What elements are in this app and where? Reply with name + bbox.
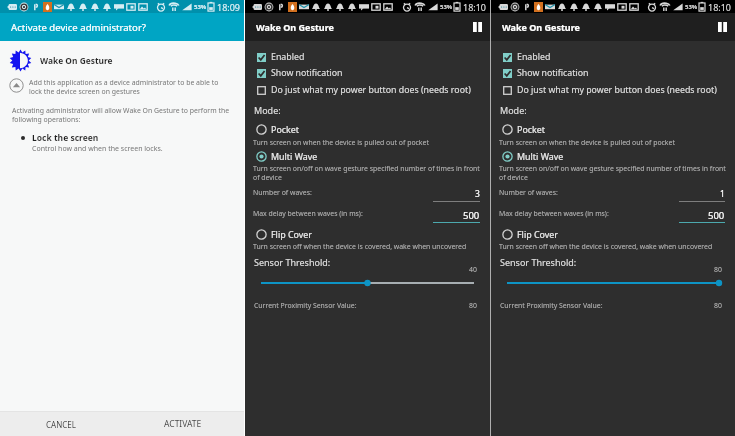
staticText: Turn screen on when the device is pulled… (253, 138, 429, 147)
staticText: Wake On Gesture (256, 21, 467, 33)
button[interactable]: Show notification (491, 66, 735, 80)
staticText: Multi Wave (271, 150, 318, 162)
staticText: Show notification (271, 67, 343, 79)
staticText: Lock the screen (32, 132, 99, 144)
staticText: 18:10 (463, 1, 487, 13)
staticText: 1 (720, 188, 725, 200)
button[interactable]: Do just what my power button does (needs… (491, 83, 735, 97)
staticText: Activate device administrator? (11, 21, 147, 34)
staticText: 53% (440, 3, 453, 11)
staticText: Wake On Gesture (40, 55, 113, 66)
staticText: Turn screen on/off on wave gesture speci… (499, 164, 729, 182)
staticText: Max delay between waves (in ms): (253, 209, 363, 218)
staticText: Current Proximity Sensor Value: (254, 301, 357, 310)
button[interactable] (245, 277, 490, 289)
button[interactable]: Pause (712, 17, 732, 37)
staticText: Multi Wave (517, 150, 564, 162)
staticText: Control how and when the screen locks. (32, 144, 163, 154)
staticText: Sensor Threshold: (254, 256, 331, 268)
staticText: Do just what my power button does (needs… (271, 84, 471, 96)
staticText: CANCEL (46, 419, 76, 430)
button[interactable]: ACTIVATE (122, 412, 244, 436)
staticText: 18:09 (217, 1, 241, 13)
staticText: 500 (708, 209, 725, 222)
staticText: Number of waves: (253, 188, 312, 197)
staticText: 53% (194, 3, 207, 11)
button[interactable]: Pocket (491, 122, 735, 136)
staticText: 18:10 (708, 1, 732, 13)
button[interactable]: Multi Wave (491, 149, 735, 163)
button[interactable]: Pocket (245, 122, 490, 136)
button[interactable]: Enabled (245, 50, 490, 64)
staticText: Do just what my power button does (needs… (517, 84, 717, 96)
staticText: Show notification (517, 67, 589, 79)
staticText: Pocket (271, 123, 299, 135)
staticText: 80 (469, 301, 477, 310)
staticText: Flip Cover (517, 228, 559, 240)
staticText: Turn screen off when the device is cover… (253, 242, 467, 251)
button[interactable]: Flip Cover (245, 227, 490, 241)
staticText: Turn screen off when the device is cover… (499, 242, 713, 251)
staticText: Max delay between waves (in ms): (499, 209, 609, 218)
button[interactable]: Show notification (245, 66, 490, 80)
staticText: 53% (685, 3, 698, 11)
staticText: Enabled (517, 51, 551, 63)
staticText: Flip Cover (271, 228, 313, 240)
staticText: Current Proximity Sensor Value: (500, 301, 603, 310)
staticText: 3 (475, 188, 480, 200)
staticText: Turn screen on/off on wave gesture speci… (253, 164, 484, 182)
staticText: Activating administrator will allow Wake… (12, 106, 234, 124)
staticText: Mode: (500, 104, 527, 116)
staticText: Turn screen on when the device is pulled… (499, 138, 675, 147)
staticText: 80 (491, 265, 722, 274)
staticText: Sensor Threshold: (500, 256, 577, 268)
staticText: Mode: (254, 104, 281, 116)
staticText: 80 (714, 301, 722, 310)
button[interactable]: Pause (467, 17, 487, 37)
button[interactable]: Flip Cover (491, 227, 735, 241)
staticText: Add this application as a device adminis… (29, 78, 220, 96)
staticText: 40 (245, 265, 477, 274)
staticText: Enabled (271, 51, 305, 63)
staticText: 500 (463, 209, 480, 222)
button[interactable]: Multi Wave (245, 149, 490, 163)
button[interactable]: Do just what my power button does (needs… (245, 83, 490, 97)
staticText: ACTIVATE (164, 418, 202, 430)
staticText: Wake On Gesture (502, 21, 712, 33)
staticText: Number of waves: (499, 188, 558, 197)
staticText: Pocket (517, 123, 545, 135)
button[interactable]: Enabled (491, 50, 735, 64)
button[interactable]: CANCEL (0, 412, 122, 436)
button[interactable] (491, 277, 735, 289)
